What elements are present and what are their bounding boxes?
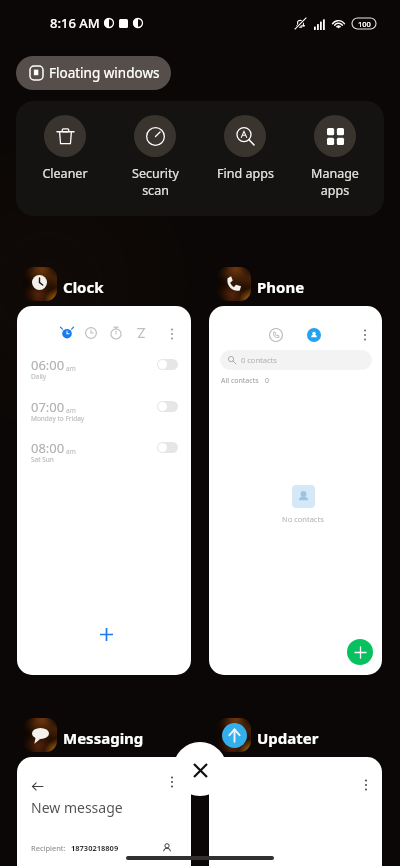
button[interactable]: Alarm	[17, 306, 191, 675]
button[interactable]: Back	[26, 775, 48, 797]
button[interactable]: More options	[359, 778, 373, 792]
staticText: 07:00	[31, 398, 65, 416]
button[interactable]: 0 contacts	[220, 350, 372, 370]
staticText: 18730218809	[71, 843, 119, 853]
staticText: All contacts	[221, 376, 259, 386]
staticText: 8:16 AM	[50, 14, 100, 32]
button[interactable]: More options	[209, 757, 382, 866]
button[interactable]: Alarm	[61, 327, 73, 339]
staticText: Security scan	[132, 165, 179, 198]
button[interactable]: Updater	[210, 714, 319, 752]
button[interactable]: Alarm toggle	[157, 401, 178, 412]
button[interactable]: More options	[165, 775, 179, 789]
button[interactable]: Alarm toggle	[157, 442, 178, 453]
staticText: am	[66, 447, 76, 456]
staticText: am	[66, 406, 76, 415]
staticText: New message	[31, 798, 123, 817]
staticText: 0 contacts	[241, 355, 277, 365]
button[interactable]: Manage apps	[294, 115, 376, 198]
staticText: Monday to Friday	[31, 414, 85, 423]
staticText: Clock	[63, 277, 104, 297]
button[interactable]: Stopwatch	[110, 327, 122, 339]
button[interactable]: Back	[17, 757, 191, 866]
button[interactable]: Clock	[85, 327, 97, 339]
button[interactable]: Security scan	[114, 115, 196, 198]
button[interactable]: 0 contacts	[209, 306, 382, 675]
staticText: Cleaner	[42, 165, 88, 182]
staticText: am	[66, 364, 76, 373]
staticText: Sat Sun	[31, 455, 54, 464]
staticText: Floating windows	[49, 64, 160, 82]
staticText: Daily	[31, 372, 47, 381]
staticText: 06:00	[31, 356, 65, 374]
staticText: 08:00	[31, 439, 65, 457]
staticText: 0	[265, 376, 270, 386]
staticText: Manage apps	[311, 165, 359, 198]
button[interactable]: Add alarm	[88, 616, 124, 652]
button[interactable]: Alarm toggle	[157, 359, 178, 370]
staticText: No contacts	[282, 514, 324, 524]
button[interactable]: More options	[165, 327, 179, 341]
staticText: Phone	[257, 277, 305, 297]
button[interactable]: Phone	[210, 263, 305, 301]
button[interactable]: Timer	[135, 327, 147, 339]
staticText: Recipient:	[31, 843, 66, 853]
button[interactable]: Floating windows	[16, 56, 171, 90]
button[interactable]: Messaging	[16, 714, 144, 752]
button[interactable]: Close all apps	[173, 742, 227, 796]
staticText: 100	[358, 19, 371, 29]
button[interactable]: Find apps	[204, 115, 286, 182]
button[interactable]: Add contact	[347, 639, 373, 665]
button[interactable]: Cleaner	[24, 115, 106, 182]
button[interactable]: Clock	[16, 263, 104, 301]
staticText: Find apps	[217, 165, 274, 182]
staticText: Messaging	[63, 728, 144, 748]
staticText: Updater	[257, 728, 319, 748]
